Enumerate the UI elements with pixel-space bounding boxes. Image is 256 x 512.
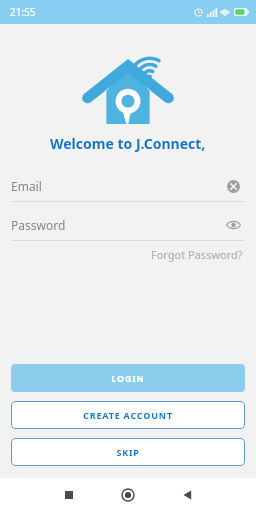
button[interactable]: Home [111, 478, 145, 512]
button[interactable]: SKIP [11, 438, 245, 466]
staticText: 21:55 [10, 5, 36, 19]
staticText: Email [11, 178, 221, 194]
staticText: LOGIN [111, 372, 145, 384]
staticText: Forgot Password? [151, 247, 243, 262]
button[interactable]: LOGIN [11, 364, 245, 392]
button[interactable]: Password [11, 210, 245, 241]
button[interactable]: Show password [221, 213, 245, 237]
button[interactable]: Email [11, 171, 245, 202]
button[interactable]: Recents [52, 478, 86, 512]
staticText: SKIP [116, 446, 140, 458]
button[interactable]: Clear email [221, 174, 245, 198]
button[interactable]: Back [170, 478, 204, 512]
staticText: Password [11, 217, 221, 233]
button[interactable]: CREATE ACCOUNT [11, 401, 245, 429]
staticText: Welcome to J.Connect, [50, 134, 206, 153]
staticText: CREATE ACCOUNT [83, 409, 173, 421]
button[interactable]: Forgot Password? [149, 244, 245, 265]
